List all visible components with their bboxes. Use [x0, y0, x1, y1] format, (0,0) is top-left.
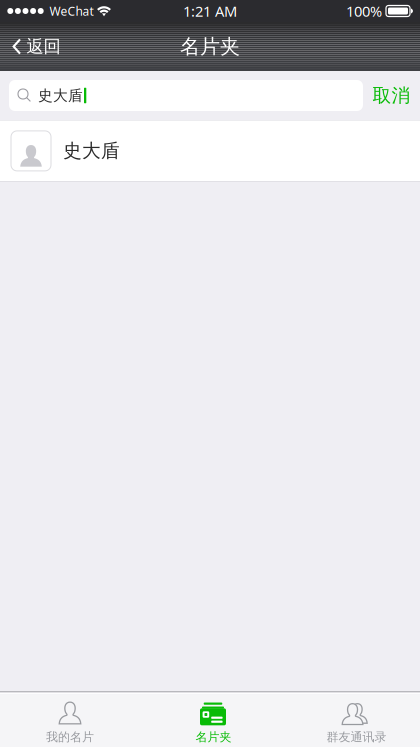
staticText: 史大盾: [63, 139, 120, 162]
button[interactable]: 名片夹: [140, 694, 280, 747]
staticText: 返回: [26, 36, 60, 57]
button[interactable]: 群友通讯录: [280, 694, 420, 747]
staticText: 100%: [346, 1, 382, 21]
staticText: 群友通讯录: [326, 729, 386, 744]
staticText: 名片夹: [195, 729, 231, 744]
staticText: 名片夹: [180, 34, 240, 59]
button[interactable]: 史大盾: [0, 121, 420, 181]
staticText: 1:21 AM: [183, 1, 237, 21]
staticText: 史大盾: [38, 86, 83, 104]
button[interactable]: 取消: [363, 80, 420, 110]
staticText: 取消: [372, 84, 410, 107]
button[interactable]: 我的名片: [0, 694, 140, 747]
staticText: WeChat: [49, 3, 93, 19]
button[interactable]: 返回: [0, 26, 60, 67]
staticText: 我的名片: [46, 729, 94, 744]
